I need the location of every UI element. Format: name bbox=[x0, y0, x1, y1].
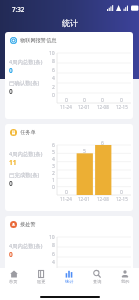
staticText: 12-01 bbox=[78, 196, 90, 202]
staticText: 0 bbox=[9, 179, 13, 188]
staticText: 0 bbox=[120, 97, 123, 104]
staticText: 11-24 bbox=[60, 104, 72, 110]
button[interactable]: 物联网报警信息 bbox=[5, 32, 133, 119]
staticText: 0 bbox=[9, 66, 13, 75]
staticText: 12-08 bbox=[97, 196, 109, 202]
staticText: 4周内总数(条) bbox=[9, 150, 43, 157]
staticText: 6 bbox=[101, 140, 104, 147]
staticText: 接处警 bbox=[20, 221, 36, 228]
button[interactable]: Home bbox=[0, 270, 27, 286]
staticText: 7:32 bbox=[12, 5, 25, 13]
staticText: 已完成数(条) bbox=[9, 171, 40, 178]
staticText: 统计 bbox=[62, 18, 78, 28]
staticText: 任务单 bbox=[20, 129, 36, 136]
staticText: 11-24 bbox=[60, 196, 72, 202]
staticText: 4周内总数(条) bbox=[9, 58, 43, 65]
staticText: 我的 bbox=[121, 279, 130, 284]
staticText: 12-08 bbox=[97, 104, 109, 110]
staticText: 4 bbox=[52, 259, 55, 266]
staticText: 12-15 bbox=[116, 196, 128, 202]
staticText: 0 bbox=[65, 281, 68, 288]
staticText: 0 bbox=[52, 92, 55, 99]
staticText: 5 bbox=[83, 148, 86, 155]
staticText: 0 bbox=[101, 97, 104, 104]
staticText: 首页 bbox=[9, 279, 18, 284]
staticText: 4 bbox=[52, 156, 55, 163]
staticText: 12-15 bbox=[116, 104, 128, 110]
button[interactable]: Search bbox=[83, 270, 111, 286]
button[interactable]: Profile bbox=[111, 270, 139, 286]
staticText: 2 bbox=[52, 84, 55, 91]
staticText: 5 bbox=[52, 149, 55, 156]
staticText: 4 bbox=[52, 75, 55, 82]
staticText: 11 bbox=[9, 158, 17, 167]
button[interactable]: 任务单 bbox=[5, 124, 133, 211]
staticText: 0 bbox=[83, 97, 86, 104]
staticText: 12-01 bbox=[78, 104, 90, 110]
staticText: 0 bbox=[65, 97, 68, 104]
staticText: 2 bbox=[52, 170, 55, 177]
button[interactable]: Statistics bbox=[55, 270, 83, 286]
staticText: 0 bbox=[9, 87, 13, 96]
staticText: 1 bbox=[52, 177, 55, 184]
staticText: 10 bbox=[49, 234, 55, 241]
staticText: 6 bbox=[52, 67, 55, 74]
button[interactable]: 接处警 bbox=[5, 216, 133, 300]
staticText: 0 bbox=[120, 281, 123, 288]
button[interactable]: Patrol bbox=[27, 270, 55, 286]
staticText: 8 bbox=[52, 58, 55, 65]
staticText: 巡更 bbox=[37, 279, 46, 284]
staticText: 物联网报警信息 bbox=[20, 37, 57, 44]
staticText: 查询 bbox=[93, 279, 102, 284]
staticText: 3 bbox=[52, 163, 55, 170]
staticText: 0 bbox=[65, 189, 68, 196]
staticText: 6 bbox=[52, 142, 55, 149]
staticText: 0 bbox=[120, 189, 123, 196]
staticText: 10 bbox=[49, 50, 55, 57]
staticText: 4周内总数(条) bbox=[9, 242, 43, 249]
staticText: 统计 bbox=[65, 279, 74, 284]
staticText: 0 bbox=[52, 184, 55, 191]
staticText: 0 bbox=[9, 250, 13, 259]
staticText: 已确认数(条) bbox=[9, 79, 40, 86]
staticText: 8 bbox=[52, 242, 55, 249]
staticText: 6 bbox=[52, 251, 55, 258]
